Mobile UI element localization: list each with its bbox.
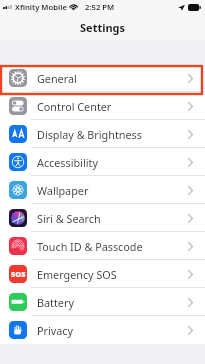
staticText: Emergency SOS <box>37 267 117 282</box>
button[interactable]: Siri & Search <box>0 204 205 232</box>
staticText: SOS <box>11 269 26 279</box>
button[interactable]: Battery <box>0 288 205 316</box>
staticText: Privacy <box>37 323 74 338</box>
button[interactable]: Display & Brightness <box>0 120 205 148</box>
staticText: Wallpaper <box>37 183 89 198</box>
staticText: 2:52 PM <box>85 2 115 12</box>
staticText: Xfinity Mobile <box>15 2 67 12</box>
button[interactable]: Privacy <box>0 316 205 344</box>
staticText: Touch ID & Passcode <box>37 239 143 254</box>
button[interactable]: Control Center <box>0 92 205 120</box>
button[interactable]: Touch ID & Passcode <box>0 232 205 260</box>
staticText: General <box>37 71 77 86</box>
button[interactable]: General <box>0 64 205 92</box>
staticText: Siri & Search <box>37 211 101 226</box>
staticText: Control Center <box>37 99 112 114</box>
button[interactable]: SOS <box>0 260 205 288</box>
button[interactable]: Wallpaper <box>0 176 205 204</box>
button[interactable]: Accessibility <box>0 148 205 176</box>
staticText: Battery <box>37 295 74 310</box>
staticText: Settings <box>80 20 126 35</box>
staticText: Accessibility <box>37 155 98 170</box>
staticText: Display & Brightness <box>37 127 142 142</box>
